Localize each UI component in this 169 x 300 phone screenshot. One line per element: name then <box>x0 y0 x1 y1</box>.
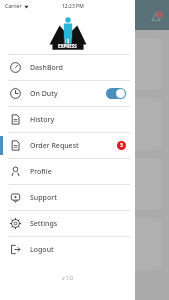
button[interactable]: Profile <box>0 159 135 184</box>
staticText: Profile <box>30 167 52 177</box>
button[interactable]: Support <box>0 185 135 210</box>
staticText: DashBord <box>30 63 63 73</box>
staticText: 12:23 PM <box>62 3 84 10</box>
staticText: Logout <box>30 245 54 255</box>
button[interactable]: History <box>0 107 135 132</box>
button[interactable]: DashBord <box>0 55 135 80</box>
button[interactable]: Order Request <box>0 133 135 158</box>
staticText: History <box>30 115 55 125</box>
button[interactable]: Settings <box>0 211 135 236</box>
staticText: Carrier <box>5 3 22 10</box>
button[interactable]: Logout <box>0 237 135 262</box>
staticText: v 1.0 <box>0 275 135 282</box>
button[interactable] <box>106 88 126 99</box>
staticText: EXPRESS <box>58 43 77 49</box>
staticText: Support <box>30 193 57 203</box>
staticText: 3 <box>120 142 123 149</box>
staticText: Settings <box>30 219 58 229</box>
button[interactable]: On Duty <box>0 81 135 106</box>
staticText: On Duty <box>30 89 58 99</box>
staticText: Order Request <box>30 141 79 151</box>
